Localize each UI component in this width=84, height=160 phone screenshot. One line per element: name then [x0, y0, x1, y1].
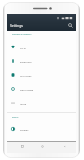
staticText: Settings [10, 23, 23, 28]
button[interactable]: Data usage [7, 82, 76, 96]
button[interactable]: Wi-Fi [7, 40, 76, 54]
staticText: Wi-Fi [20, 46, 26, 49]
button[interactable]: Display [7, 122, 76, 136]
staticText: Wireless & networks [12, 33, 32, 36]
button[interactable]: Home [37, 141, 47, 152]
button[interactable]: Bluetooth [7, 54, 76, 68]
button[interactable]: Back [59, 141, 69, 152]
button[interactable]: SIM cards [7, 68, 76, 82]
staticText: Device [12, 116, 19, 119]
button[interactable]: Recents [17, 141, 27, 152]
button[interactable]: More [7, 96, 76, 110]
staticText: Data usage [20, 88, 34, 91]
staticText: Bluetooth [20, 60, 32, 63]
button[interactable]: Search [66, 21, 74, 29]
staticText: SIM cards [20, 74, 32, 77]
staticText: Display [20, 128, 29, 131]
staticText: More [20, 102, 27, 105]
